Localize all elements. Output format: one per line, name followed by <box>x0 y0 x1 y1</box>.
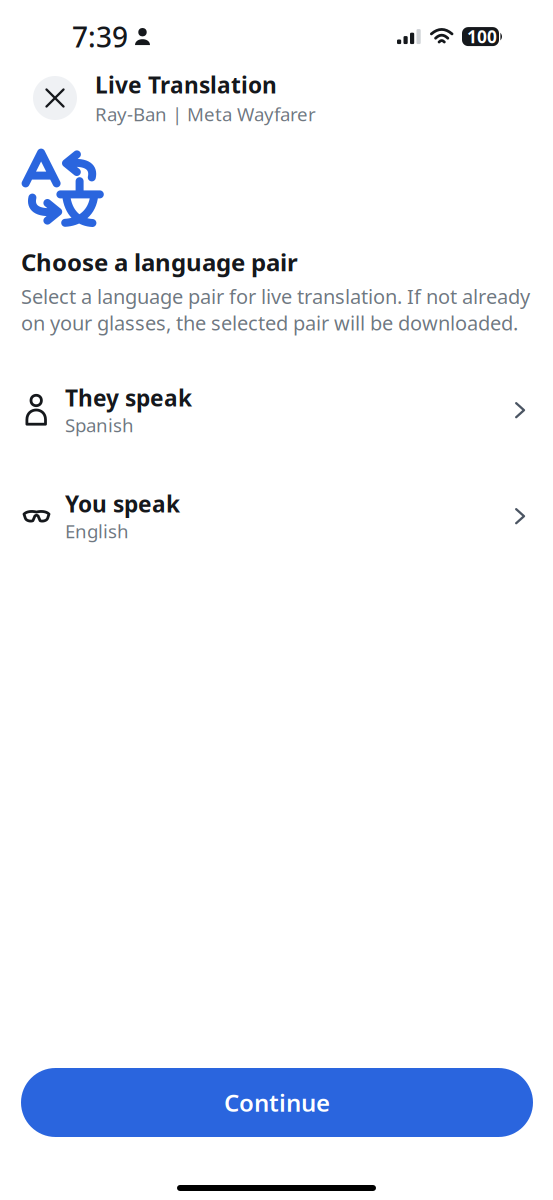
staticText: 7:39 <box>72 18 128 55</box>
staticText: English <box>65 519 129 543</box>
button[interactable]: You speak <box>0 487 553 545</box>
staticText: Select a language pair for live translat… <box>21 283 530 336</box>
staticText: Choose a language pair <box>21 246 298 278</box>
button[interactable]: They speak <box>0 381 553 439</box>
staticText: They speak <box>65 382 192 413</box>
staticText: Ray-Ban | Meta Wayfarer <box>95 102 316 126</box>
staticText: Continue <box>224 1087 330 1118</box>
button[interactable]: Continue <box>21 1068 533 1137</box>
staticText: 100 <box>467 25 497 48</box>
button[interactable]: Close <box>33 76 77 120</box>
staticText: Live Translation <box>95 70 277 100</box>
staticText: You speak <box>65 488 180 519</box>
staticText: Spanish <box>65 413 134 437</box>
